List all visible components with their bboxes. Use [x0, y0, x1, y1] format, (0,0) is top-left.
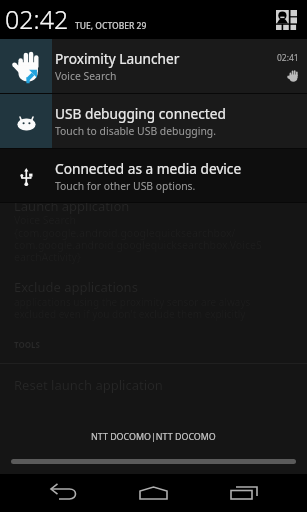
staticText: TOOLS	[14, 339, 40, 350]
button[interactable]: USB debugging connected	[0, 94, 307, 148]
button[interactable]: Recent apps	[212, 474, 276, 512]
staticText: USB debugging connected	[55, 104, 226, 123]
staticText: Reset launch application	[14, 376, 163, 394]
button[interactable]: Home	[121, 474, 185, 512]
button[interactable]: Back	[32, 474, 96, 512]
button[interactable]: Proximity Launcher	[0, 39, 307, 93]
button[interactable]: Connected as a media device	[0, 149, 307, 202]
staticText: Touch for other USB options.	[55, 179, 196, 193]
staticText: NTT DOCOMO|NTT DOCOMO	[91, 430, 216, 442]
staticText: 02:41	[277, 52, 299, 64]
staticText: Launch application	[14, 197, 130, 215]
staticText: Proximity Launcher	[55, 49, 180, 68]
staticText: TUE, OCTOBER 29	[75, 20, 147, 32]
staticText: Voice Search	[55, 69, 117, 83]
button[interactable]: Quick settings	[269, 3, 304, 36]
button[interactable]: Drag handle	[11, 459, 296, 464]
staticText: Connected as a media device	[55, 159, 242, 178]
staticText: Touch to disable USB debugging.	[55, 124, 216, 138]
staticText: 02:42	[5, 2, 69, 36]
staticText: Exclude applications	[14, 278, 138, 296]
